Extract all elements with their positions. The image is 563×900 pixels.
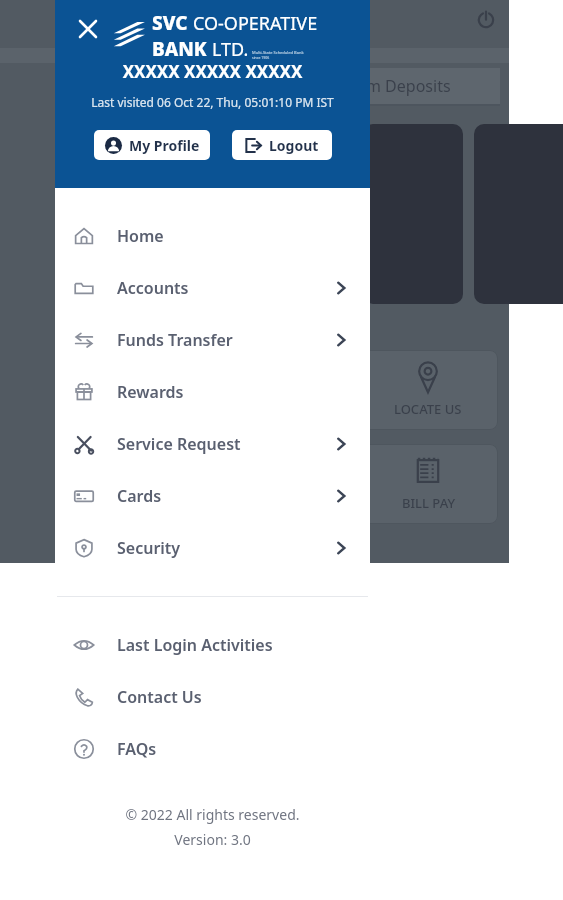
button[interactable]: Rewards [55,366,370,418]
staticText: SVC [152,10,193,36]
button[interactable]: Last Login Activities [55,619,370,671]
button[interactable]: Accounts [55,262,370,314]
staticText: BANK [152,36,212,62]
staticText: Cards [117,485,162,507]
staticText: LTD. [212,37,249,62]
staticText: Multi-State Scheduled Bank [252,50,304,55]
button[interactable]: My Profile [94,130,210,160]
staticText: LOCATE US [394,400,462,418]
staticText: Version: 3.0 [55,830,370,849]
staticText: Service Request [117,433,241,455]
button[interactable]: Close [71,12,105,46]
staticText: since 1906 [252,55,270,60]
button[interactable]: Logout [232,130,332,160]
staticText: Funds Transfer [117,329,233,351]
staticText: © 2022 All rights reserved. [55,805,370,824]
staticText: BILL PAY [402,494,455,512]
staticText: Rewards [117,381,184,403]
button[interactable]: Service Request [55,418,370,470]
button[interactable]: Home [55,210,370,262]
staticText: FAQs [117,738,157,760]
button[interactable]: Security [55,522,370,574]
staticText: Last Login Activities [117,634,273,656]
button[interactable]: FAQs [55,723,370,775]
button[interactable]: Contact Us [55,671,370,723]
staticText: Security [117,537,181,559]
staticText: Accounts [117,277,189,299]
button[interactable] [363,124,463,304]
staticText: m Deposits [366,75,451,97]
button[interactable]: LOCATE US [358,350,498,430]
staticText: Logout [269,136,319,155]
button[interactable]: Power [470,4,502,36]
staticText: XXXXX XXXXX XXXXX [55,60,370,83]
staticText: Last visited 06 Oct 22, Thu, 05:01:10 PM… [55,94,370,110]
staticText: Home [117,225,164,247]
staticText: Contact Us [117,686,202,708]
button[interactable]: Cards [55,470,370,522]
staticText: CO-OPERATIVE [193,11,318,36]
button[interactable]: Funds Transfer [55,314,370,366]
button[interactable]: BILL PAY [358,444,498,524]
staticText: My Profile [129,136,200,155]
